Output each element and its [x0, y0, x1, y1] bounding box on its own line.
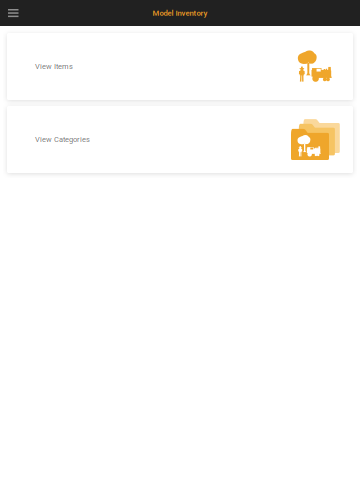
button[interactable]: View Categories: [7, 106, 353, 173]
staticText: Model Inventory: [152, 8, 207, 18]
button[interactable]: View Items: [7, 33, 353, 100]
staticText: View Items: [35, 62, 73, 71]
button[interactable]: Menu: [0, 0, 26, 26]
staticText: View Categories: [35, 135, 90, 144]
